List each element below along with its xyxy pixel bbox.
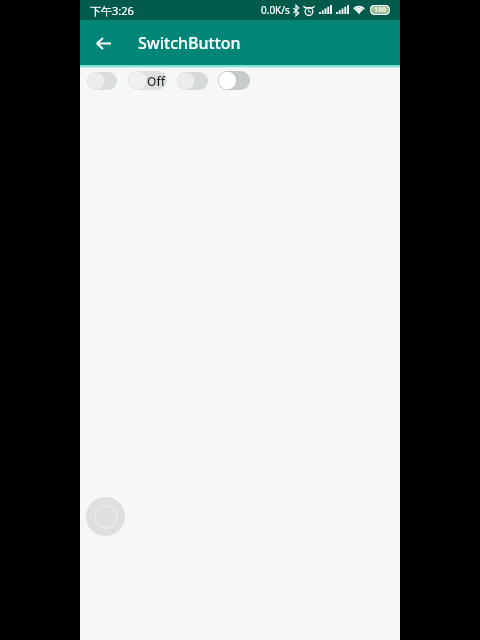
staticText: 下午3:26 [90,3,134,18]
staticText: 100 [374,5,387,15]
button[interactable]: Switch 4, off [218,71,250,90]
button[interactable]: Switch 2, off [128,71,167,90]
staticText: Off [147,73,165,89]
staticText: SwitchButton [138,32,241,54]
button[interactable]: Back [85,25,121,61]
staticText: 0.0K/s [261,3,290,17]
button[interactable]: Switch 1, off [87,72,117,90]
button[interactable]: Toggle [86,497,125,536]
button[interactable]: Switch 3, off [177,72,208,90]
